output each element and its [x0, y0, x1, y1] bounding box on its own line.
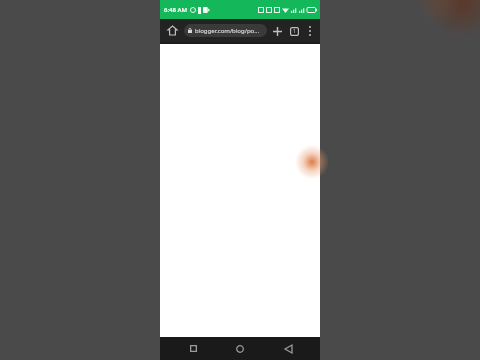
button[interactable]: blogger.com/blog/po... [184, 24, 267, 37]
staticText: 1 [293, 28, 296, 35]
button[interactable]: Switch tabs [286, 23, 302, 39]
button[interactable]: Home [225, 337, 255, 360]
button[interactable]: Recent apps [178, 337, 208, 360]
staticText: blogger.com/blog/po... [195, 27, 260, 35]
staticText: 6:48 AM [164, 6, 187, 14]
button[interactable]: New tab [269, 23, 285, 39]
button[interactable]: Home [163, 21, 182, 40]
button[interactable]: More options [303, 22, 317, 40]
button[interactable]: Back [273, 337, 303, 360]
